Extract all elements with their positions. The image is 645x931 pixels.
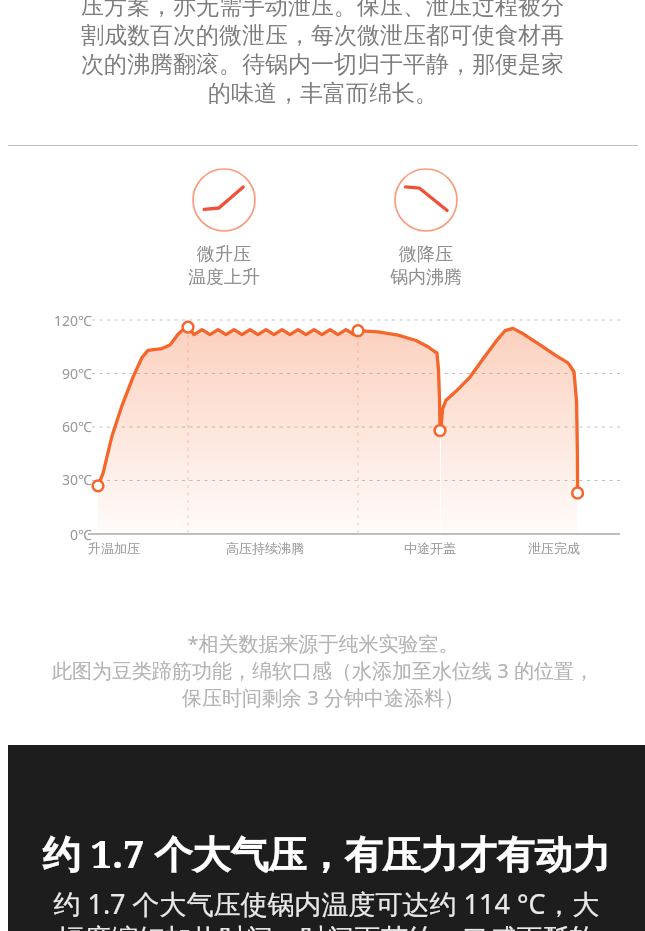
staticText: 泄压完成	[528, 540, 580, 556]
staticText: *相关数据来源于纯米实验室。	[187, 630, 459, 657]
staticText: 压方案，亦无需手动泄压。保压、泄压过程被分	[81, 0, 564, 21]
staticText: 温度上升	[188, 266, 260, 289]
staticText: 高压持续沸腾	[226, 540, 304, 556]
staticText: 微升压	[197, 243, 251, 266]
staticText: 升温加压	[88, 540, 140, 556]
staticText: 的味道，丰富而绵长。	[208, 79, 438, 108]
button[interactable]: 微升压 温度上升	[192, 168, 256, 232]
staticText: 此图为豆类蹄筋功能，绵软口感（水添加至水位线 3 的位置，	[52, 657, 594, 684]
staticText: 90℃	[18, 364, 92, 383]
staticText: 60℃	[18, 417, 92, 436]
staticText: 约 1.7 个大气压使锅内温度可达约 114 °C，大	[53, 885, 600, 922]
staticText: 保压时间剩余 3 分钟中途添料）	[182, 684, 464, 711]
staticText: 120℃	[18, 311, 92, 330]
button[interactable]: 微降压 锅内沸腾	[394, 168, 458, 232]
staticText: 次的沸腾翻滚。待锅内一切归于平静，那便是家	[81, 50, 564, 79]
staticText: 幅度缩短加热时间，时间更节约，口感更酥软	[57, 922, 597, 931]
staticText: 中途开盖	[404, 540, 456, 556]
staticText: 锅内沸腾	[390, 266, 462, 289]
staticText: 30℃	[18, 470, 92, 489]
staticText: 割成数百次的微泄压，每次微泄压都可使食材再	[81, 21, 564, 50]
staticText: 微降压	[399, 243, 453, 266]
staticText: 约 1.7 个大气压，有压力才有动力	[8, 827, 645, 879]
staticText: 0℃	[18, 525, 92, 544]
